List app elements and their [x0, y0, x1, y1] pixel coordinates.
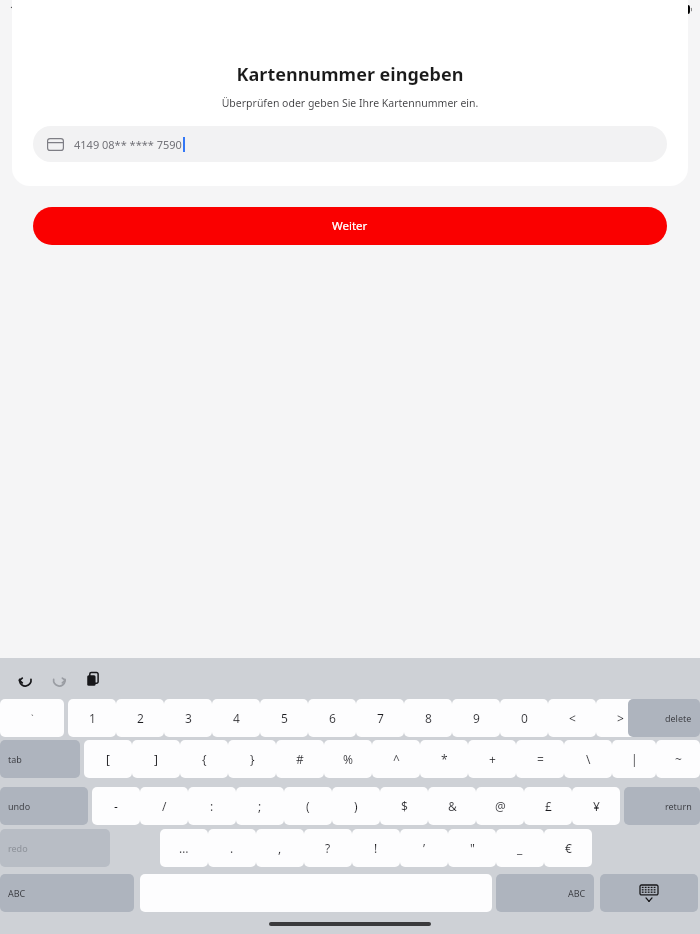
staticText: 8	[425, 710, 432, 726]
button[interactable]: ?	[304, 829, 352, 867]
button[interactable]: ~	[656, 740, 700, 778]
button[interactable]: *	[420, 740, 468, 778]
staticText: 2	[137, 710, 144, 726]
staticText: "	[470, 840, 475, 856]
button[interactable]: Weiter	[33, 207, 667, 245]
button[interactable]: Rückgängig	[12, 666, 38, 692]
staticText: 6	[329, 710, 336, 726]
staticText: Weiter	[332, 218, 368, 234]
button[interactable]: >	[596, 699, 644, 737]
button[interactable]: 2	[116, 699, 164, 737]
button[interactable]: 5	[260, 699, 308, 737]
button[interactable]: 0	[500, 699, 548, 737]
button[interactable]: 8	[404, 699, 452, 737]
button[interactable]: :	[188, 787, 236, 825]
button[interactable]: $	[380, 787, 428, 825]
staticText: ~	[675, 751, 682, 767]
button[interactable]: }	[228, 740, 276, 778]
button[interactable]: =	[516, 740, 564, 778]
staticText: £	[545, 798, 552, 814]
button[interactable]: 9	[452, 699, 500, 737]
staticText: {	[202, 751, 207, 767]
button[interactable]: /	[140, 787, 188, 825]
staticText: 0	[521, 710, 528, 726]
staticText: [	[106, 751, 110, 767]
button[interactable]: +	[468, 740, 516, 778]
staticText: *	[441, 751, 448, 767]
staticText: ABC	[8, 887, 26, 899]
button[interactable]: _	[496, 829, 544, 867]
staticText: …	[179, 840, 189, 856]
staticText: 4149 08** **** 7590	[74, 137, 182, 152]
button[interactable]: #	[276, 740, 324, 778]
staticText: &	[448, 798, 457, 814]
button[interactable]: €	[544, 829, 592, 867]
staticText: ]	[154, 751, 158, 767]
button[interactable]: .	[208, 829, 256, 867]
staticText: 10:49 AM	[10, 3, 50, 15]
button[interactable]: &	[428, 787, 476, 825]
button[interactable]: ABC	[496, 874, 594, 912]
button[interactable]: !	[352, 829, 400, 867]
staticText: >	[617, 710, 624, 726]
button[interactable]: 4	[212, 699, 260, 737]
button[interactable]: undo	[0, 787, 88, 825]
button[interactable]: (	[284, 787, 332, 825]
button[interactable]: Schließen	[8, 20, 38, 50]
staticText: =	[537, 751, 544, 767]
staticText: Überprüfen oder geben Sie Ihre Kartennum…	[12, 96, 688, 110]
button[interactable]: ¥	[572, 787, 620, 825]
button[interactable]: ^	[372, 740, 420, 778]
button[interactable]: Tastatur ausblenden	[600, 874, 698, 912]
button[interactable]: {	[180, 740, 228, 778]
staticText: -	[114, 798, 118, 814]
button[interactable]: 6	[308, 699, 356, 737]
button[interactable]: -	[92, 787, 140, 825]
staticText: /	[162, 798, 167, 814]
button[interactable]: <	[548, 699, 596, 737]
button[interactable]: £	[524, 787, 572, 825]
staticText: undo	[8, 800, 31, 812]
staticText: ¥	[593, 798, 600, 814]
button[interactable]: `	[0, 699, 64, 737]
staticText: !	[374, 840, 378, 856]
staticText: |	[631, 751, 638, 767]
button[interactable]: 7	[356, 699, 404, 737]
button[interactable]: Einfügen	[80, 666, 106, 692]
staticText: .	[230, 840, 234, 856]
button[interactable]: 1	[68, 699, 116, 737]
button[interactable]: |	[612, 740, 656, 778]
staticText: (	[306, 798, 310, 814]
button[interactable]: redo	[0, 829, 110, 867]
button[interactable]: @	[476, 787, 524, 825]
button[interactable]: \	[564, 740, 612, 778]
staticText: `	[31, 712, 34, 724]
button[interactable]: [	[84, 740, 132, 778]
staticText: ,	[278, 840, 282, 856]
button[interactable]: ABC	[0, 874, 134, 912]
button[interactable]: %	[324, 740, 372, 778]
button[interactable]: tab	[0, 740, 80, 778]
button[interactable]: ,	[256, 829, 304, 867]
button[interactable]: "	[448, 829, 496, 867]
button[interactable]: 3	[164, 699, 212, 737]
button[interactable]: )	[332, 787, 380, 825]
staticText: redo	[8, 842, 28, 854]
button[interactable]: Wiederholen	[46, 666, 72, 692]
staticText: +	[489, 751, 496, 767]
button[interactable]: return	[624, 787, 700, 825]
button[interactable]: delete	[628, 699, 700, 737]
staticText: ?	[325, 840, 331, 856]
button[interactable]: …	[160, 829, 208, 867]
button[interactable]: ’	[400, 829, 448, 867]
staticText: <	[569, 710, 576, 726]
button[interactable]: 4149 08** **** 7590	[33, 126, 667, 162]
button[interactable]: ;	[236, 787, 284, 825]
button[interactable]: ]	[132, 740, 180, 778]
staticText: 3	[185, 710, 192, 726]
staticText: tab	[8, 753, 22, 765]
staticText: Kartennummer eingeben	[12, 62, 688, 87]
staticText: \	[586, 751, 591, 767]
staticText: 5	[281, 710, 288, 726]
